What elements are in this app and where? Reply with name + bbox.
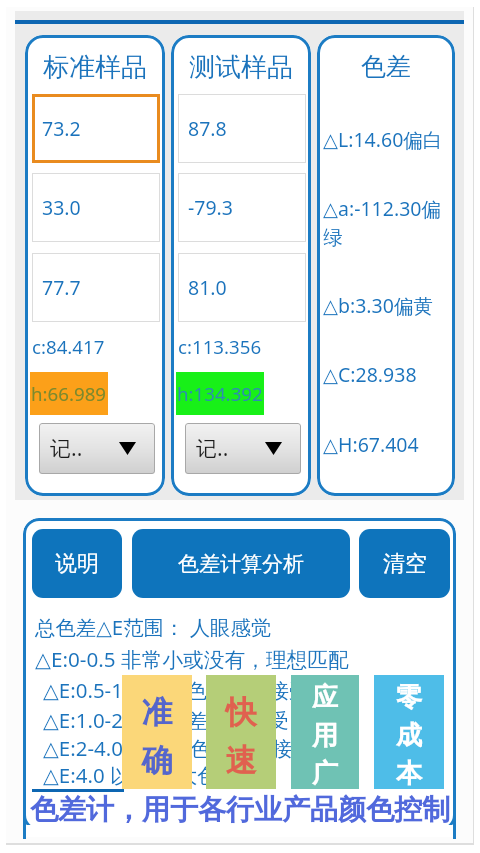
staticText: △H:67.404 [323, 431, 419, 458]
staticText: 色差计，用于各行业产品颜色控制 [24, 792, 456, 827]
staticText: 87.8 [188, 115, 227, 142]
staticText: 测试样品 [171, 51, 311, 84]
staticText: △b:3.30偏黄 [323, 292, 433, 319]
button[interactable]: 说明 [32, 529, 122, 598]
staticText: △E:0.5-1.0 微小色差，可接受 [43, 676, 310, 704]
staticText: 清空 [383, 550, 427, 578]
button[interactable]: 清空 [359, 529, 450, 598]
staticText: 确 [122, 741, 192, 780]
staticText: △E:4.0 以上 很大色差 [43, 761, 239, 789]
staticText: 本 [374, 757, 444, 790]
staticText: 记.. [50, 434, 83, 463]
staticText: 速 [206, 741, 276, 780]
button[interactable]: 73.2 [32, 94, 160, 163]
staticText: 零 [374, 681, 444, 714]
staticText: 色差计算分析 [178, 551, 304, 577]
staticText: 总色差△E范围： 人眼感觉 [35, 613, 272, 641]
button[interactable]: 77.7 [32, 253, 160, 322]
staticText: 准 [122, 693, 192, 732]
staticText: 33.0 [42, 194, 81, 221]
staticText: 应 [291, 681, 359, 714]
staticText: -79.3 [188, 194, 233, 221]
staticText: 77.7 [42, 274, 81, 301]
button[interactable]: 81.0 [178, 253, 306, 322]
staticText: h:134.392 [177, 381, 263, 406]
button[interactable]: 色差计算分析 [132, 529, 350, 598]
button[interactable]: Select record [39, 423, 155, 474]
staticText: 用 [291, 719, 359, 752]
button[interactable]: Select record [185, 423, 301, 474]
staticText: △L:14.60偏白 [323, 126, 443, 153]
button[interactable]: 33.0 [32, 173, 160, 242]
staticText: △E:1.0-2.0 小色差，可接受 [43, 706, 289, 734]
staticText: 73.2 [42, 115, 81, 142]
staticText: c:84.417 [32, 334, 105, 359]
button[interactable]: -79.3 [178, 173, 306, 242]
staticText: 广 [291, 757, 359, 790]
staticText: h:66.989 [31, 381, 107, 406]
staticText: △a:-112.30偏绿 [323, 195, 447, 250]
staticText: 快 [206, 693, 276, 732]
staticText: △E:0-0.5 非常小或没有，理想匹配 [35, 645, 349, 673]
staticText: 81.0 [188, 274, 227, 301]
staticText: △C:28.938 [323, 361, 417, 388]
button[interactable]: 87.8 [178, 94, 306, 163]
staticText: 标准样品 [25, 51, 165, 84]
staticText: 说明 [55, 550, 99, 578]
staticText: △E:2-4.0 感觉到色差，可接受 [43, 734, 313, 762]
staticText: 成 [374, 719, 444, 752]
staticText: 色差 [317, 51, 455, 82]
staticText: c:113.356 [178, 334, 262, 359]
staticText: 记.. [196, 434, 229, 463]
